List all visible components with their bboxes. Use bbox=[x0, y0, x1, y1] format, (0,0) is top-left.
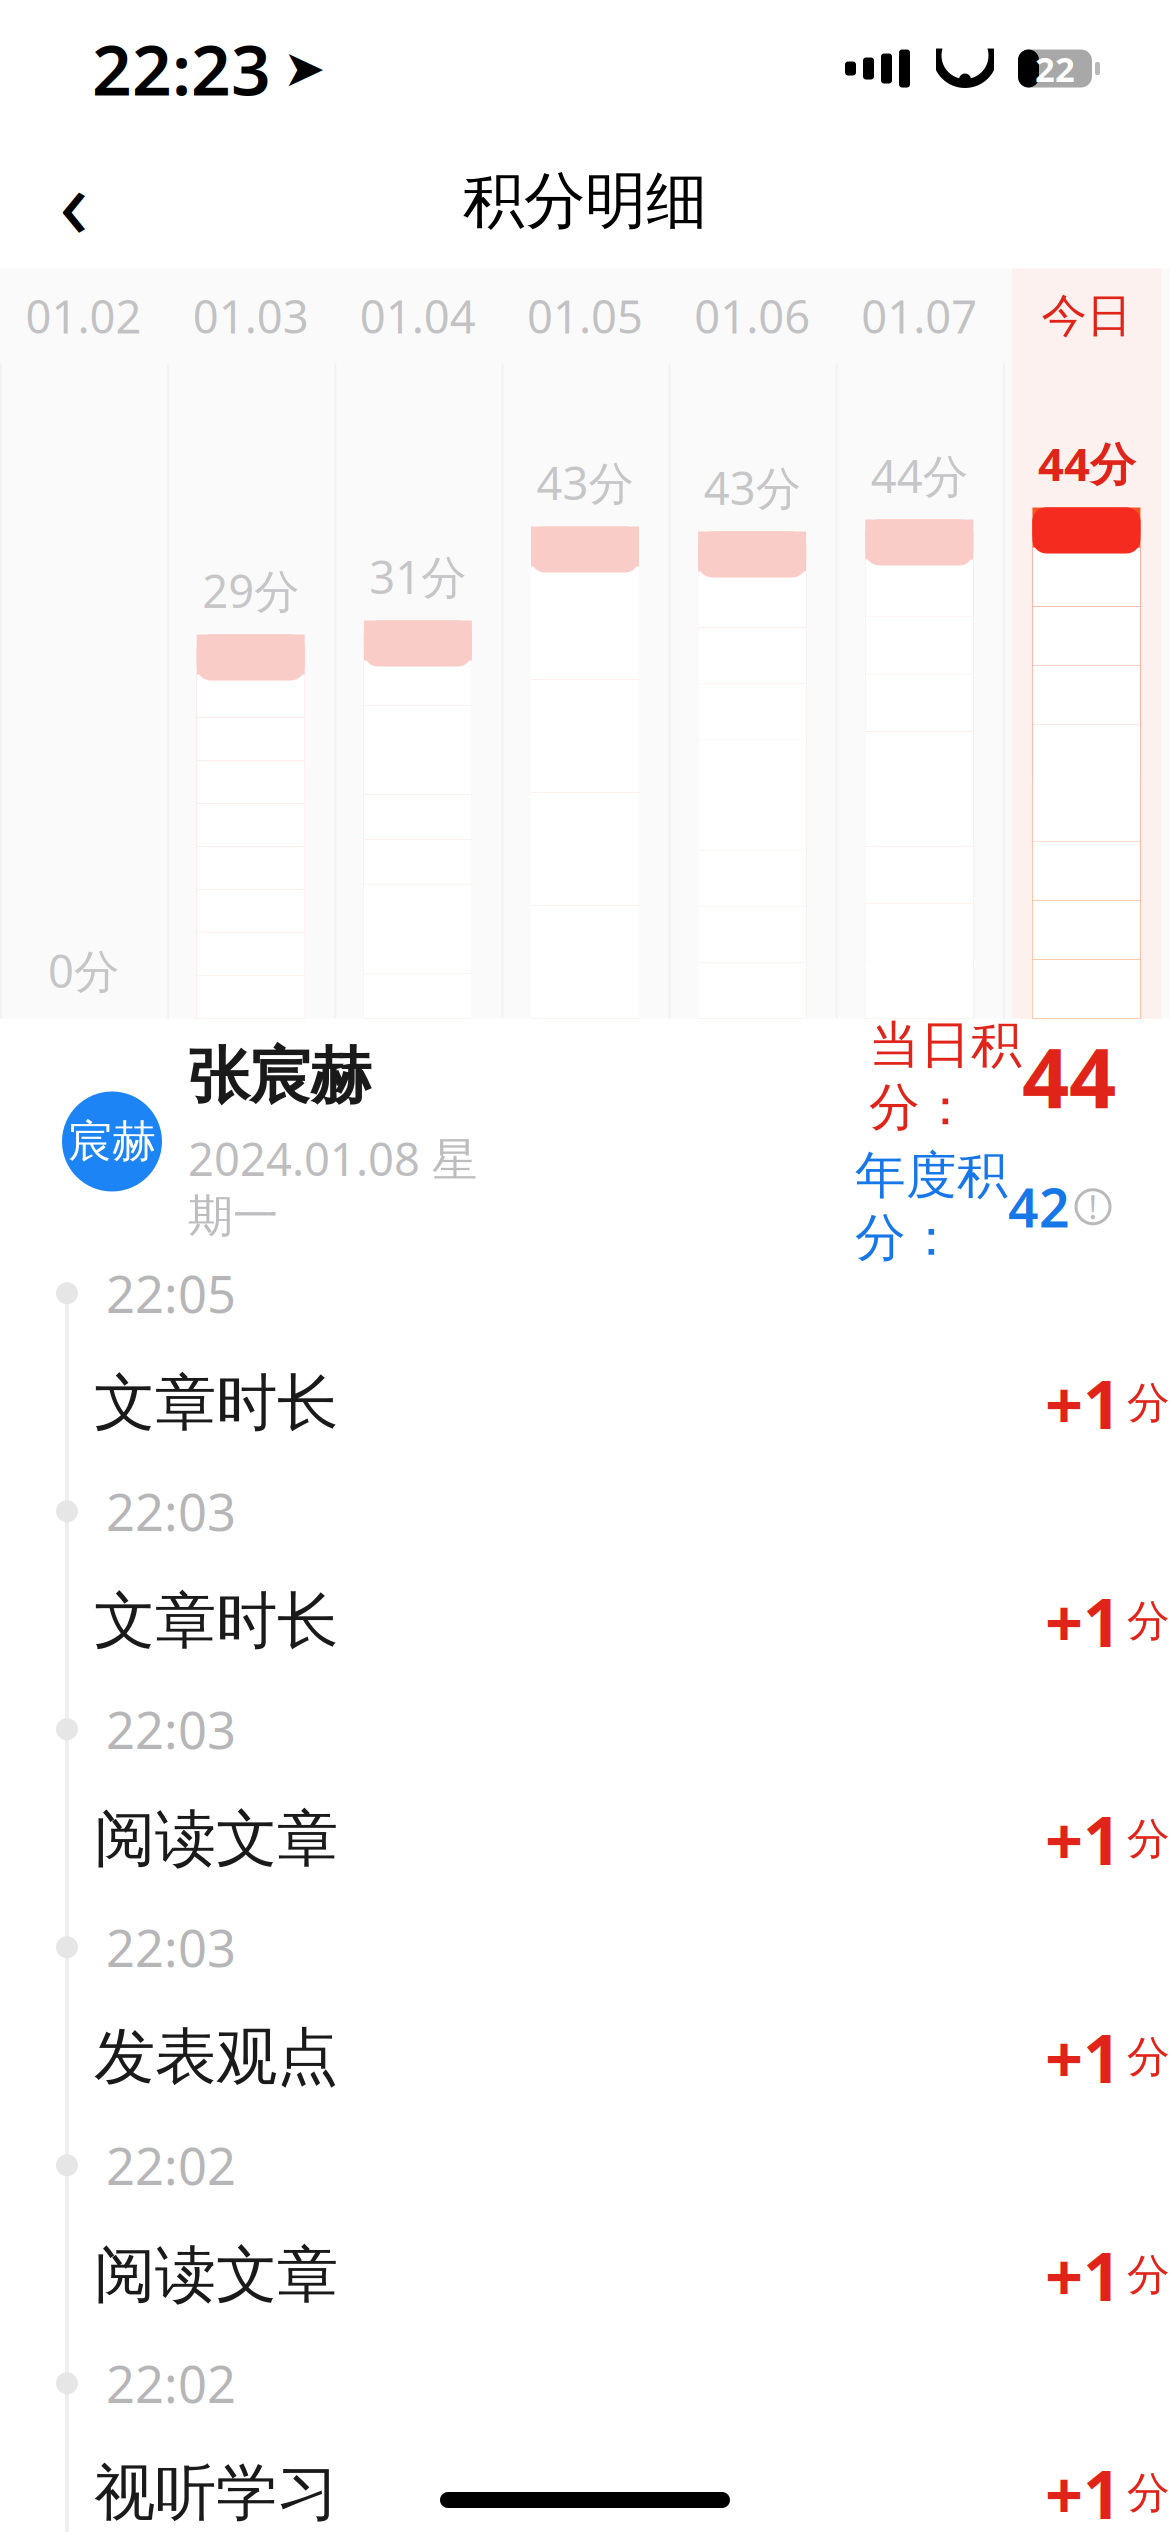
staticText: 文章时长 bbox=[94, 1583, 338, 1659]
staticText: 视听学习 bbox=[94, 2455, 338, 2531]
staticText: ‹ bbox=[59, 137, 89, 265]
staticText: 0分 bbox=[48, 940, 119, 1000]
staticText: 当日积分： bbox=[869, 1014, 1022, 1138]
staticText: +1 bbox=[1045, 2231, 1121, 2319]
staticText: 分 bbox=[1127, 2249, 1170, 2301]
staticText: +1 bbox=[1045, 1577, 1121, 1665]
staticText: 22:23 bbox=[92, 22, 271, 115]
staticText: 22:03 bbox=[106, 1914, 236, 1981]
staticText: 22:03 bbox=[106, 1696, 236, 1763]
button[interactable]: 年度积分说明 bbox=[1070, 1184, 1116, 1230]
staticText: 42 bbox=[1008, 1171, 1070, 1242]
staticText: 分 bbox=[1127, 2467, 1170, 2519]
staticText: 分 bbox=[1127, 1813, 1170, 1865]
staticText: 44分 bbox=[871, 445, 968, 505]
button[interactable]: 22:02 bbox=[0, 2117, 1170, 2335]
staticText: 22:02 bbox=[106, 2132, 236, 2199]
button[interactable]: 22:03 bbox=[0, 1899, 1170, 2117]
staticText: +1 bbox=[1045, 2013, 1121, 2101]
staticText: 22 bbox=[1035, 45, 1075, 91]
staticText: 2024.01.08 星期一 bbox=[188, 1128, 477, 1244]
button[interactable]: 22:02 bbox=[0, 2335, 1170, 2532]
staticText: 43分 bbox=[536, 452, 633, 512]
staticText: 年度积分： bbox=[855, 1144, 1008, 1269]
button[interactable]: 22:03 bbox=[0, 1463, 1170, 1681]
staticText: ➤ bbox=[283, 40, 325, 97]
staticText: 01.06 bbox=[694, 286, 810, 346]
staticText: 今日 bbox=[1041, 288, 1131, 344]
staticText: 44分 bbox=[1038, 433, 1135, 493]
staticText: +1 bbox=[1045, 1359, 1121, 1447]
staticText: 发表观点 bbox=[94, 2019, 338, 2095]
staticText: 43分 bbox=[704, 457, 801, 517]
staticText: 宸赫 bbox=[68, 1114, 156, 1168]
staticText: +1 bbox=[1045, 2449, 1121, 2532]
staticText: 01.04 bbox=[360, 286, 476, 346]
staticText: 分 bbox=[1127, 1377, 1170, 1429]
staticText: +1 bbox=[1045, 1795, 1121, 1883]
button[interactable]: 22:03 bbox=[0, 1681, 1170, 1899]
staticText: 44 bbox=[1022, 1021, 1116, 1131]
staticText: 01.05 bbox=[527, 286, 643, 346]
staticText: 01.07 bbox=[861, 286, 977, 346]
staticText: 01.03 bbox=[193, 286, 309, 346]
staticText: 01.02 bbox=[26, 286, 142, 346]
staticText: 积分明细 bbox=[463, 163, 707, 239]
staticText: 阅读文章 bbox=[94, 2237, 338, 2313]
button[interactable]: 返回 bbox=[24, 151, 124, 251]
staticText: 阅读文章 bbox=[94, 1801, 338, 1877]
staticText: 张宸赫 bbox=[188, 1039, 371, 1114]
button[interactable]: 22:05 bbox=[0, 1245, 1170, 1463]
staticText: 22:05 bbox=[106, 1260, 236, 1327]
staticText: 22:02 bbox=[106, 2350, 236, 2417]
staticText: 文章时长 bbox=[94, 1365, 338, 1441]
staticText: 31分 bbox=[369, 546, 466, 606]
staticText: 分 bbox=[1127, 1595, 1170, 1647]
staticText: 分 bbox=[1127, 2031, 1170, 2083]
staticText: 29分 bbox=[202, 560, 299, 620]
staticText: 22:03 bbox=[106, 1478, 236, 1545]
staticText: ! bbox=[1088, 1185, 1097, 1228]
